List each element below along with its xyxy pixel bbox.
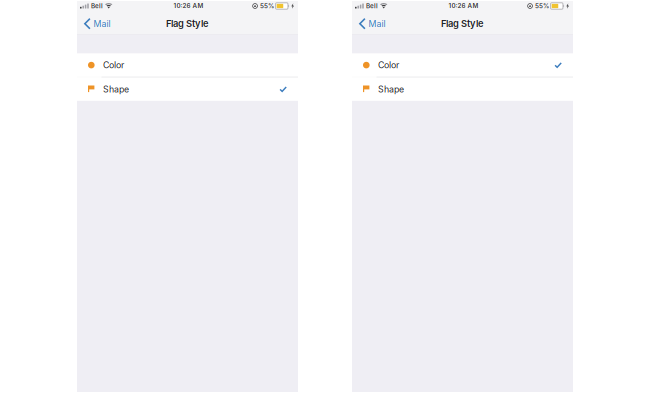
staticText: Flag Style [166,18,209,29]
button[interactable]: Shape [352,77,573,101]
staticText: 55% [260,2,274,10]
button[interactable]: Back to Mail [77,13,116,34]
staticText: Bell [91,2,103,10]
staticText: Shape [378,84,404,94]
staticText: Color [103,60,124,70]
staticText: Shape [103,84,129,94]
staticText: 10:26 AM [448,2,478,10]
staticText: Color [378,60,399,70]
button[interactable]: Color [77,53,298,77]
button[interactable]: Shape [77,77,298,101]
staticText: Bell [366,2,378,10]
staticText: 55% [535,2,549,10]
staticText: 10:26 AM [173,2,203,10]
staticText: Mail [93,18,110,29]
button[interactable]: Back to Mail [352,13,391,34]
staticText: Mail [368,18,385,29]
button[interactable]: Color [352,53,573,77]
staticText: Flag Style [441,18,484,29]
